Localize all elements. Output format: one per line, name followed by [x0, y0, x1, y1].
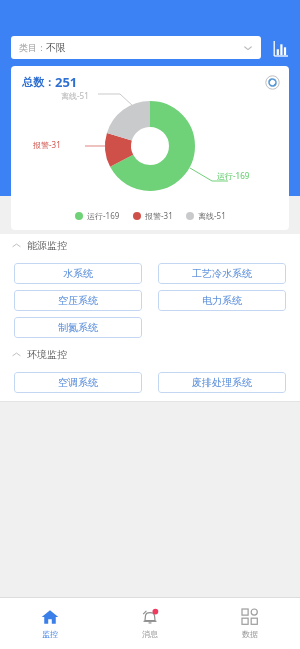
staticText: 报警-31 — [145, 210, 173, 221]
button[interactable]: 水系统 — [14, 263, 142, 284]
staticText: 工艺冷水系统 — [192, 267, 252, 280]
button[interactable]: Messages — [100, 598, 200, 649]
button[interactable]: 数据 — [200, 598, 300, 649]
staticText: 环境监控 — [27, 348, 67, 361]
staticText: 离线-51 — [198, 210, 226, 221]
staticText: 不限 — [46, 41, 66, 54]
staticText: 运行-169 — [87, 210, 120, 221]
staticText: 数据 — [242, 629, 258, 639]
other: Messages — [141, 608, 159, 626]
button[interactable]: 类目： — [11, 36, 261, 59]
button[interactable]: 空调系统 — [14, 372, 142, 393]
staticText: 离线-51 — [61, 90, 89, 101]
staticText: 废排处理系统 — [192, 376, 252, 389]
button[interactable]: Refresh — [263, 73, 281, 91]
button[interactable]: 制氮系统 — [14, 317, 142, 338]
staticText: 类目： — [19, 42, 46, 53]
button[interactable]: 电力系统 — [158, 290, 286, 311]
button[interactable]: 空压系统 — [14, 290, 142, 311]
button[interactable]: 监控 — [0, 598, 100, 649]
staticText: 运行-169 — [217, 170, 250, 181]
staticText: 制氮系统 — [58, 321, 98, 334]
staticText: 水系统 — [63, 267, 93, 280]
staticText: 监控 — [42, 629, 58, 639]
staticText: 空压系统 — [58, 294, 98, 307]
button[interactable]: 工艺冷水系统 — [158, 263, 286, 284]
staticText: 能源监控 — [27, 239, 67, 252]
staticText: 总数： — [22, 75, 55, 89]
staticText: 251 — [55, 73, 78, 91]
button[interactable]: Statistics chart — [269, 37, 291, 59]
button[interactable]: 废排处理系统 — [158, 372, 286, 393]
staticText: 报警-31 — [33, 139, 61, 150]
staticText: 电力系统 — [202, 294, 242, 307]
staticText: 空调系统 — [58, 376, 98, 389]
staticText: 消息 — [142, 629, 158, 639]
